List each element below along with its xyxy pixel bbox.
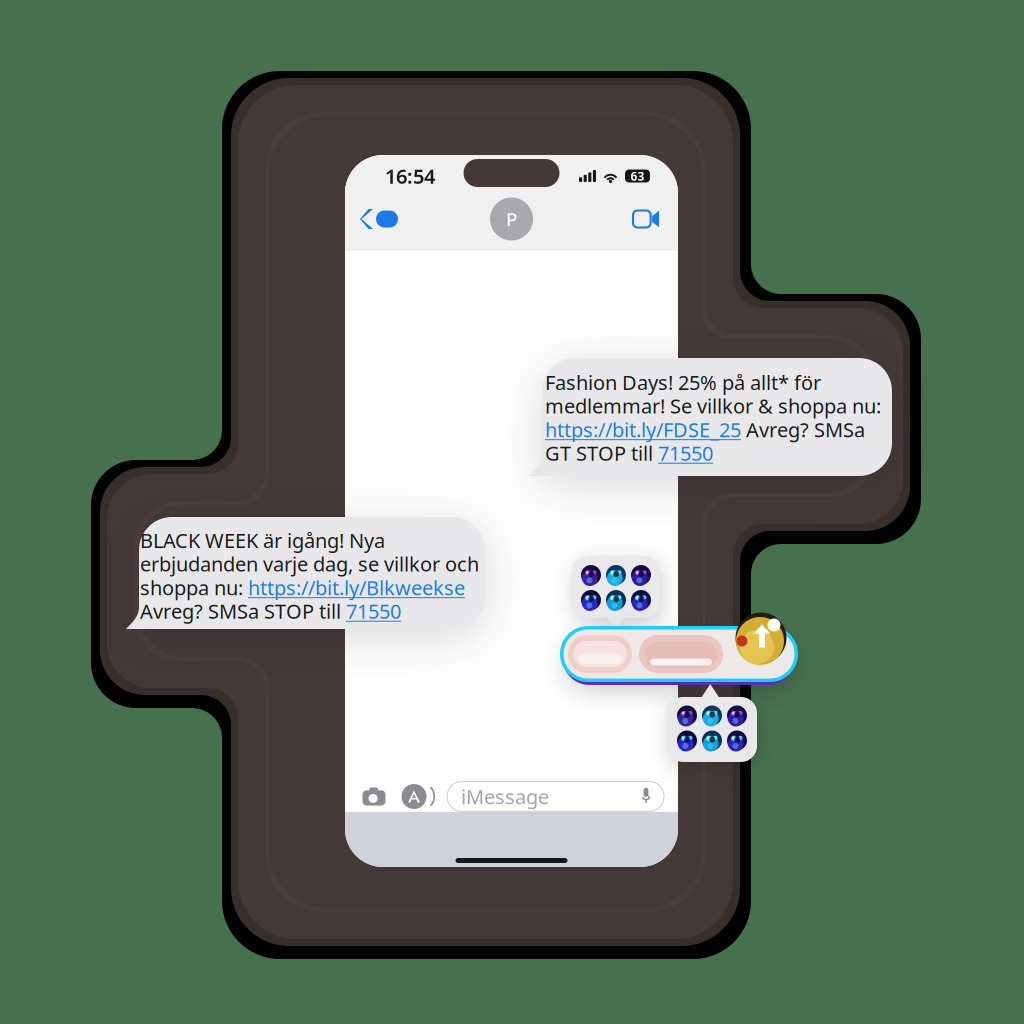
staticText: 63 [630,168,644,184]
staticText: P [506,207,517,231]
staticText: 71550 [658,440,713,466]
staticText: shoppa nu: [140,574,248,601]
button[interactable]: Apps [401,779,435,813]
staticText: Fashion Days! 25% på allt* för [545,369,821,396]
staticText: 71550 [346,598,401,624]
button[interactable]: FaceTime [624,197,668,241]
staticText: GT STOP till [545,440,658,466]
staticText: iMessage [461,783,549,810]
staticText: 16:54 [385,163,435,189]
button[interactable]: Contact P [490,197,533,240]
staticText: erbjudanden varje dag, se villkor och [140,551,479,577]
button[interactable]: Message field [447,781,664,811]
staticText: BLACK WEEK är igång! Nya [140,527,385,554]
button[interactable]: Camera [359,779,389,813]
staticText: Avreg? SMSa STOP till [140,598,346,624]
staticText: https://bit.ly/FDSE_25 [545,416,741,443]
staticText: Avreg? SMSa [741,416,865,443]
staticText: https://bit.ly/Blkweekse [248,574,465,601]
button[interactable]: Back [355,197,403,241]
staticText: medlemmar! Se villkor & shoppa nu: [545,393,881,419]
